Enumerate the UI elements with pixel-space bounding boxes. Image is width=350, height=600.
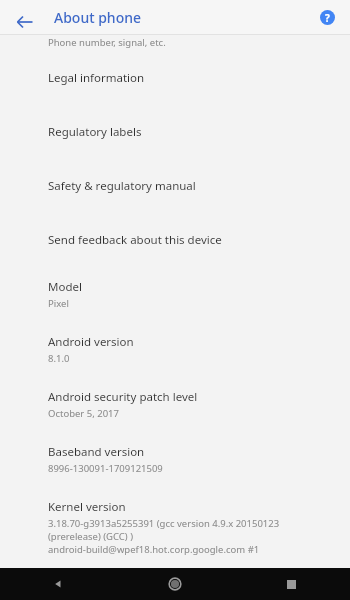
button[interactable]: Legal information	[0, 51, 350, 105]
button[interactable]: Back	[0, 568, 116, 600]
staticText: Send feedback about this device	[48, 232, 222, 248]
staticText: ?	[325, 11, 330, 25]
button[interactable]: Safety & regulatory manual	[0, 159, 350, 213]
staticText: Legal information	[48, 70, 145, 86]
staticText: Kernel version	[48, 499, 126, 515]
staticText: Pixel	[48, 297, 69, 310]
button[interactable]: Baseband version	[0, 432, 350, 487]
staticText: Android security patch level	[48, 389, 198, 405]
button[interactable]: Help	[316, 6, 338, 28]
staticText: Phone number, signal, etc.	[48, 36, 166, 49]
button[interactable]: Recent apps	[233, 568, 350, 600]
staticText: About phone	[54, 8, 142, 27]
button[interactable]: Kernel version	[0, 487, 350, 568]
staticText: October 5, 2017	[48, 407, 119, 420]
staticText: 3.18.70-g3913a5255391 (gcc version 4.9.x…	[48, 517, 280, 530]
staticText: Android version	[48, 334, 134, 350]
staticText: android-build@wpef18.hot.corp.google.com…	[48, 543, 260, 556]
button[interactable]: Phone number, signal, etc.	[0, 35, 350, 51]
button[interactable]: Send feedback about this device	[0, 213, 350, 267]
button[interactable]: Android version	[0, 322, 350, 377]
staticText: Model	[48, 279, 82, 295]
button[interactable]: Android security patch level	[0, 377, 350, 432]
staticText: (prerelease) (GCC) )	[48, 530, 133, 543]
staticText: Regulatory labels	[48, 124, 142, 140]
staticText: 8.1.0	[48, 352, 70, 365]
staticText: 8996-130091-1709121509	[48, 462, 163, 475]
staticText: Baseband version	[48, 444, 145, 460]
button[interactable]: Regulatory labels	[0, 105, 350, 159]
button[interactable]: Home	[116, 568, 233, 600]
button[interactable]: Back	[10, 7, 40, 37]
button[interactable]: Model	[0, 267, 350, 322]
staticText: Safety & regulatory manual	[48, 178, 196, 194]
